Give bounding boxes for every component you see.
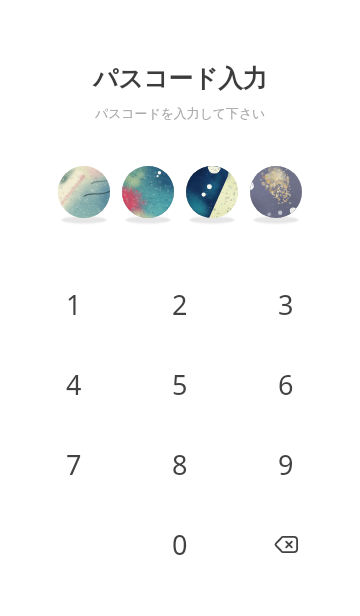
button[interactable]: 6 [233, 344, 339, 424]
staticText: パスコードを入力して下さい [95, 106, 266, 122]
button[interactable]: 0 [127, 504, 233, 584]
button[interactable]: 2 [127, 264, 233, 344]
button[interactable]: 5 [127, 344, 233, 424]
button[interactable]: Backspace [233, 504, 339, 584]
staticText: 8 [172, 446, 188, 483]
staticText: 7 [66, 446, 82, 483]
staticText: 2 [172, 286, 188, 323]
staticText: 5 [172, 366, 188, 403]
button[interactable]: 1 [21, 264, 127, 344]
staticText: 1 [66, 286, 82, 323]
button[interactable]: 3 [233, 264, 339, 344]
button[interactable]: 9 [233, 424, 339, 504]
staticText: パスコード入力 [93, 63, 268, 94]
staticText: 3 [278, 286, 294, 323]
staticText: 4 [66, 366, 82, 403]
staticText: 9 [278, 446, 294, 483]
staticText: 6 [278, 366, 294, 403]
button[interactable]: 7 [21, 424, 127, 504]
staticText: 0 [172, 526, 188, 563]
button[interactable]: 8 [127, 424, 233, 504]
button[interactable]: 4 [21, 344, 127, 424]
